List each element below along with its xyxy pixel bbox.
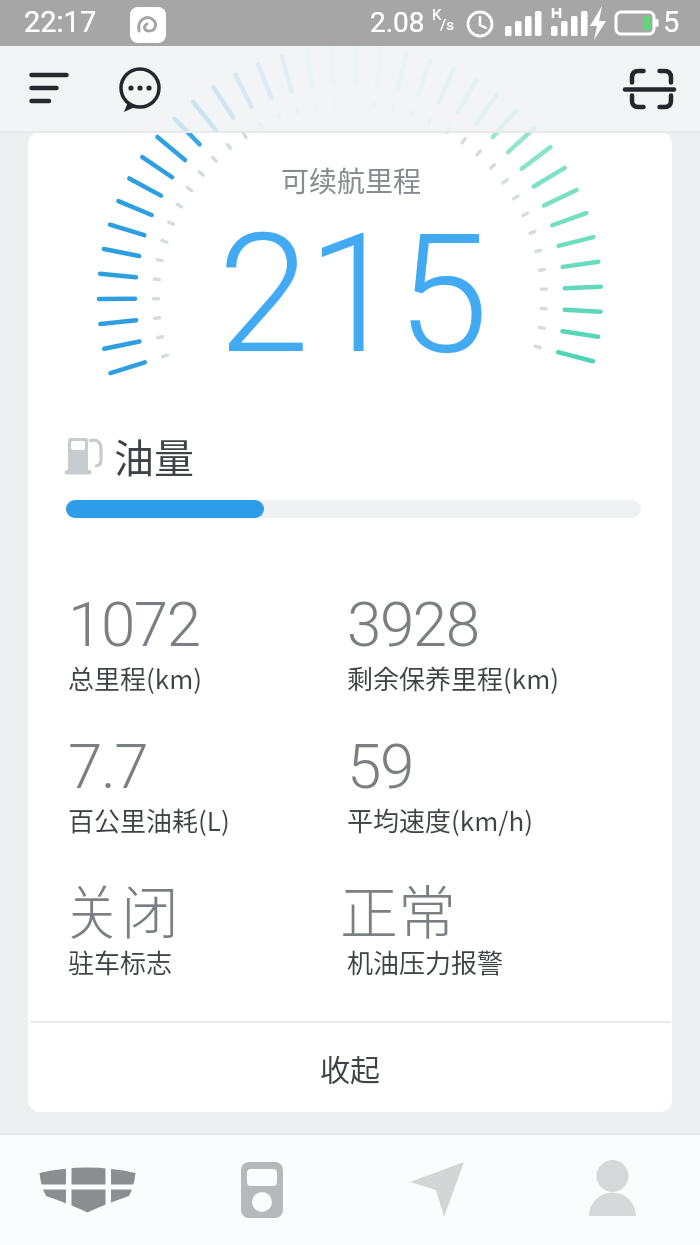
staticText: 3928 — [347, 588, 479, 661]
staticText: 总里程(km) — [68, 659, 203, 697]
staticText: 215 — [218, 198, 487, 391]
staticText: 平均速度(km/h) — [347, 801, 533, 839]
button[interactable] — [525, 1133, 700, 1245]
button[interactable] — [350, 1133, 525, 1245]
button[interactable] — [618, 60, 686, 118]
staticText: 7.7 — [68, 730, 148, 803]
staticText: 1072 — [68, 588, 200, 661]
staticText: 5 — [663, 5, 680, 39]
button[interactable]: 收起 — [28, 1023, 672, 1112]
staticText: K — [432, 6, 442, 24]
staticText: 正常 — [340, 867, 457, 951]
staticText: /s — [440, 16, 454, 34]
staticText: 2.08 — [370, 6, 425, 39]
staticText: 百公里油耗(L) — [68, 801, 230, 839]
button[interactable] — [112, 60, 172, 118]
staticText: 收起 — [320, 1046, 380, 1089]
staticText: 22:17 — [24, 5, 97, 39]
staticText: 油量 — [114, 427, 194, 485]
button[interactable] — [14, 60, 84, 118]
staticText: 机油压力报警 — [347, 943, 504, 981]
staticText: 可续航里程 — [281, 160, 422, 201]
button[interactable] — [175, 1133, 350, 1245]
staticText: 59 — [347, 730, 413, 803]
staticText: 关闭 — [63, 867, 180, 951]
staticText: 驻车标志 — [68, 943, 173, 981]
button[interactable] — [0, 1133, 175, 1245]
staticText: 剩余保养里程(km) — [347, 659, 560, 697]
